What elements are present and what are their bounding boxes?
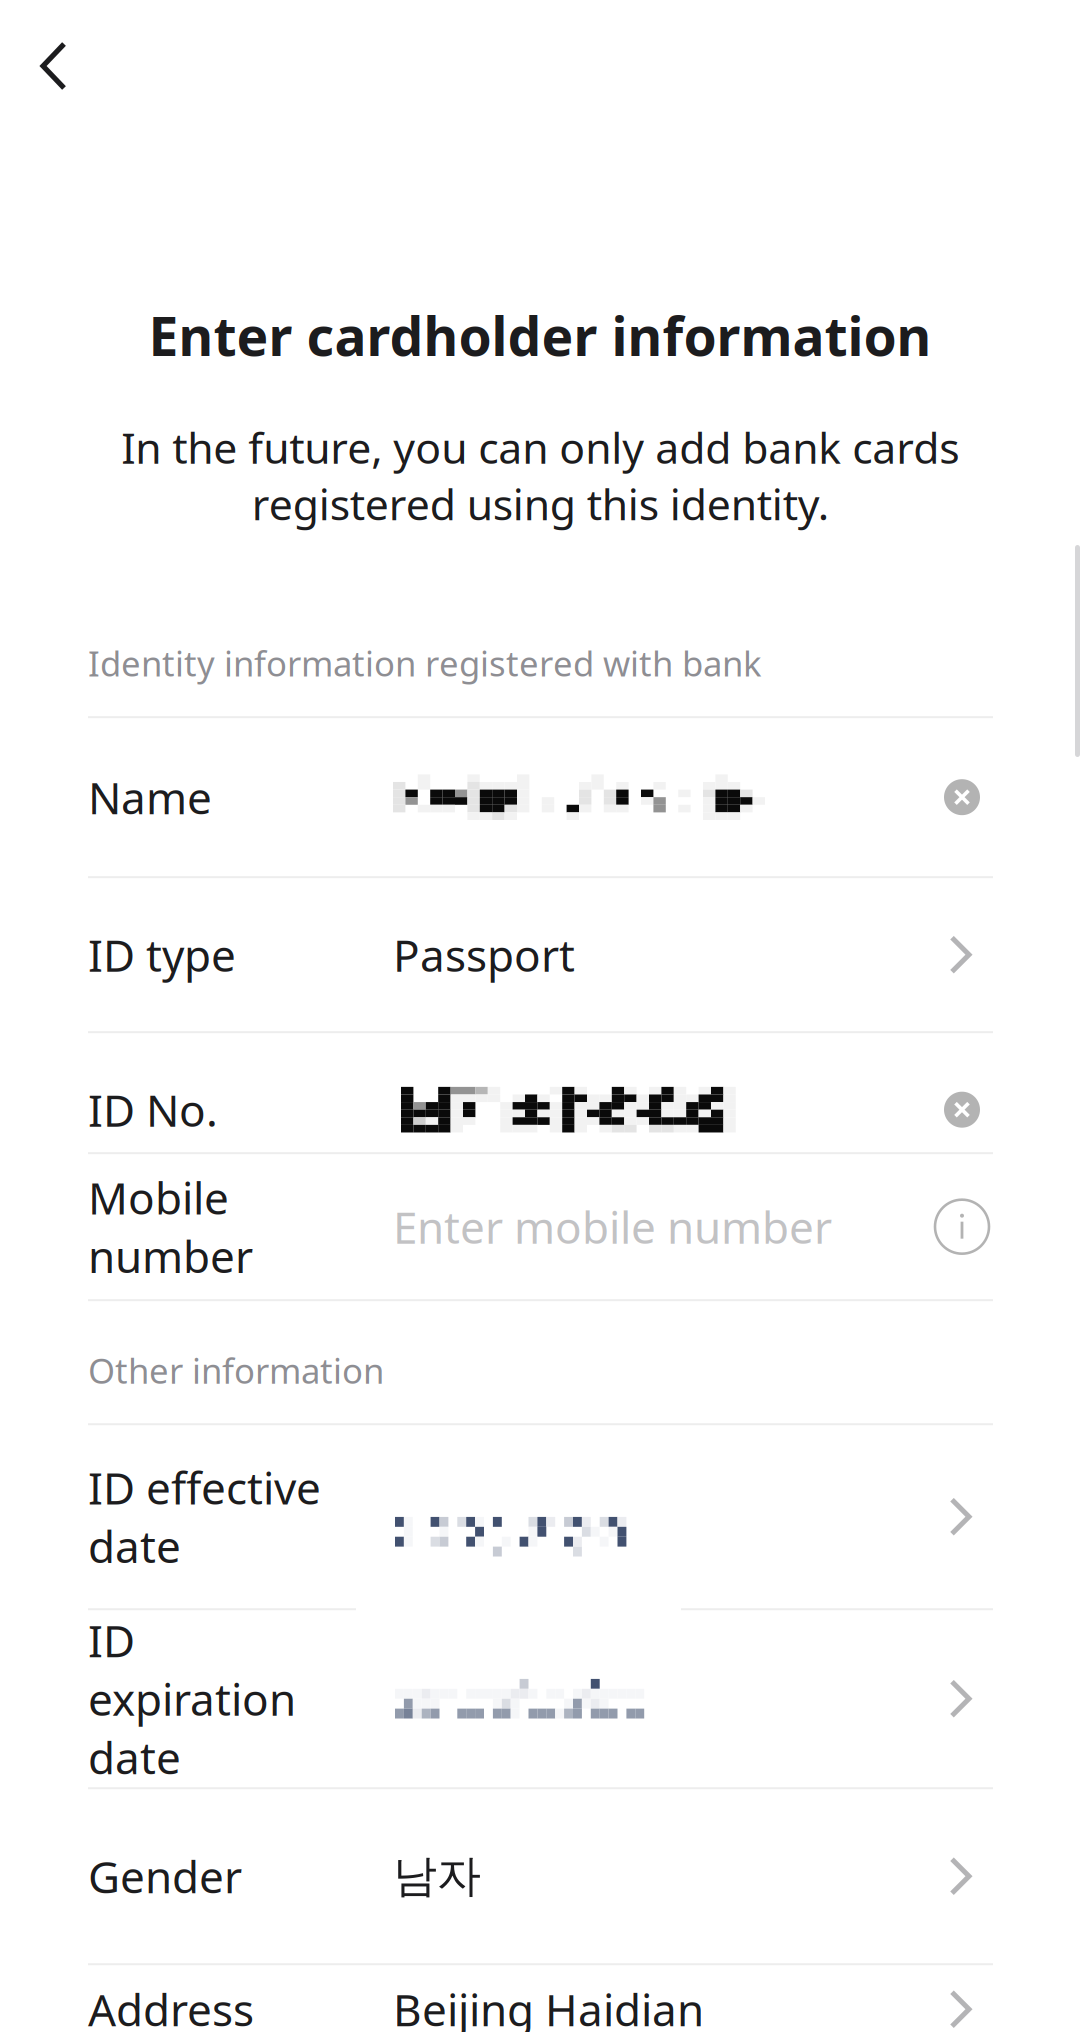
button[interactable]: ID expiration date	[0, 1610, 1080, 1787]
staticText: Mobile number	[88, 1168, 253, 1285]
button[interactable]: Address	[0, 1965, 1080, 2032]
staticText: Identity information registered with ban…	[88, 640, 762, 686]
button[interactable]: Name	[0, 718, 1080, 876]
staticText: ID No.	[88, 1080, 218, 1139]
staticText: Other information	[88, 1347, 384, 1393]
staticText: 남자	[393, 1849, 481, 1903]
button[interactable]: Back	[0, 0, 132, 132]
staticText: Enter mobile number	[393, 1197, 832, 1256]
staticText: Enter cardholder information	[148, 300, 931, 371]
staticText: Gender	[88, 1847, 242, 1905]
staticText: Name	[88, 768, 212, 826]
staticText: ID effective date	[88, 1458, 321, 1575]
staticText: Address	[88, 1980, 254, 2032]
button[interactable]: Mobile number	[0, 1154, 1080, 1299]
button[interactable]: ID No.	[0, 1033, 1080, 1152]
button[interactable]: Gender	[0, 1789, 1080, 1963]
button[interactable]: ID type	[0, 878, 1080, 1031]
staticText: Beijing Haidian	[393, 1980, 704, 2032]
staticText: In the future, you can only add bank car…	[121, 419, 959, 532]
staticText: ID expiration date	[88, 1611, 296, 1786]
button[interactable]: ID effective date	[0, 1425, 1080, 1608]
staticText: ID type	[88, 925, 236, 984]
staticText: Passport	[393, 925, 575, 984]
